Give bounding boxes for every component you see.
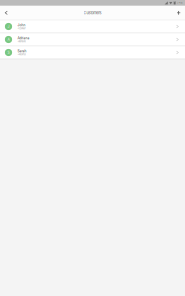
staticText: +4424753 (17, 53, 25, 56)
button[interactable]: Add customer (172, 6, 185, 20)
staticText: S (7, 50, 9, 55)
staticText: A (7, 37, 9, 42)
staticText: +1234567 (17, 27, 25, 30)
button[interactable]: S (0, 46, 185, 59)
staticText: +9876543 (17, 40, 25, 43)
staticText: John (17, 23, 25, 27)
button[interactable]: Back (0, 6, 12, 20)
button[interactable]: J (0, 20, 185, 33)
staticText: Sarah (17, 49, 26, 53)
button[interactable]: A (0, 33, 185, 46)
staticText: 7:48 (177, 1, 182, 4)
staticText: Adriana (17, 36, 29, 40)
staticText: Customers (83, 10, 101, 15)
staticText: J (7, 24, 9, 29)
